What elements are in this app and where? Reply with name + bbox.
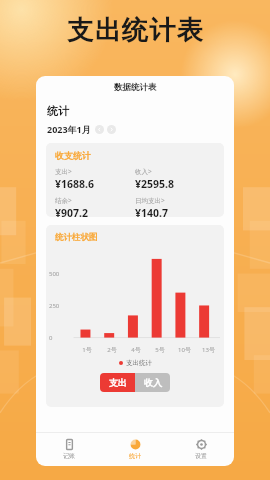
staticText: 0: [49, 334, 53, 342]
staticText: 支出: [109, 377, 127, 388]
staticText: 统计柱状图: [55, 232, 98, 243]
staticText: 13号: [202, 346, 215, 354]
button[interactable]: 设置: [168, 433, 234, 466]
staticText: ¥1688.6: [55, 177, 94, 191]
staticText: ¥907.2: [55, 206, 88, 217]
staticText: 支出>: [55, 167, 72, 176]
staticText: 250: [49, 302, 60, 310]
staticText: 10号: [178, 346, 191, 354]
staticText: 支出统计: [126, 359, 152, 367]
staticText: 收入: [144, 377, 162, 388]
button[interactable]: 支出: [100, 373, 135, 392]
staticText: 500: [49, 270, 60, 278]
button[interactable]: 收入: [135, 373, 170, 392]
staticText: 2023年1月: [47, 123, 91, 135]
button[interactable]: 记账: [36, 433, 102, 466]
staticText: 支出统计表: [67, 14, 203, 47]
button[interactable]: 统计: [102, 433, 168, 466]
staticText: 记账: [63, 452, 75, 460]
staticText: 2号: [107, 346, 117, 354]
button[interactable]: 收支统计: [46, 143, 224, 217]
button[interactable]: Next month: [107, 125, 116, 134]
staticText: 设置: [195, 452, 207, 460]
button[interactable]: Previous month: [95, 125, 104, 134]
staticText: 收入>: [135, 167, 152, 176]
staticText: 1号: [82, 346, 92, 354]
staticText: 结余>: [55, 196, 72, 205]
staticText: ¥2595.8: [135, 177, 174, 191]
staticText: 日均支出>: [135, 196, 165, 205]
staticText: 收支统计: [55, 150, 91, 161]
staticText: 5号: [155, 346, 165, 354]
staticText: ¥140.7: [135, 206, 168, 217]
staticText: 统计: [47, 104, 69, 118]
staticText: 4号: [131, 346, 141, 354]
staticText: 数据统计表: [114, 82, 157, 93]
staticText: 统计: [129, 452, 141, 460]
